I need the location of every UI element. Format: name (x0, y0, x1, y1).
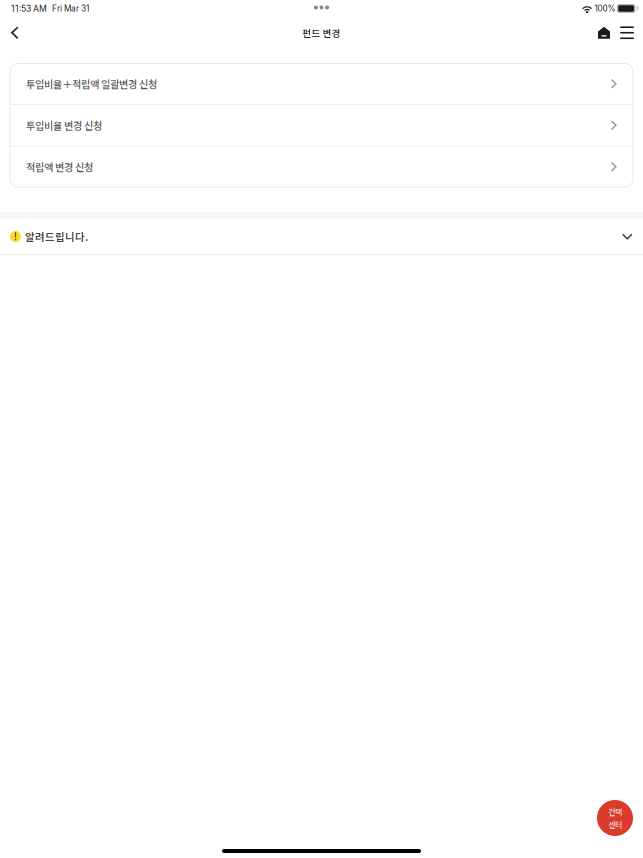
staticText: 투입비율 변경 신청 (26, 118, 102, 133)
staticText: 투입비율＋적립액 일괄변경 신청 (26, 76, 157, 91)
staticText: Fri Mar 31 (52, 3, 89, 13)
button[interactable]: 투입비율 변경 신청 (10, 105, 633, 145)
button[interactable]: Back (2, 19, 28, 47)
button[interactable]: Home (594, 19, 614, 47)
staticText: ! (14, 230, 17, 243)
staticText: 적립액 변경 신청 (26, 159, 93, 174)
button[interactable]: ! (0, 219, 643, 254)
staticText: 100% (594, 3, 615, 13)
button[interactable]: 적립액 변경 신청 (10, 146, 633, 187)
button[interactable]: 컨택 센터 (597, 800, 633, 836)
button[interactable]: Menu (614, 19, 640, 47)
staticText: 센터 (608, 818, 622, 830)
button[interactable]: 투입비율＋적립액 일괄변경 신청 (10, 63, 633, 104)
staticText: 알려드립니다. (25, 229, 88, 244)
staticText: 컨택 (608, 806, 622, 817)
staticText: 11:53 AM (11, 3, 47, 14)
staticText: 펀드 변경 (302, 26, 340, 40)
